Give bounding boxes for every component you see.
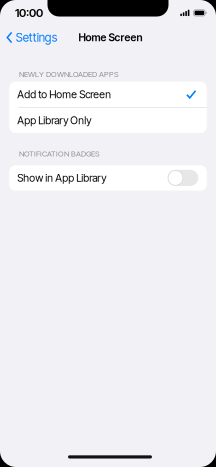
staticText: App Library Only (17, 114, 91, 127)
staticText: Show in App Library (17, 171, 106, 184)
staticText: NEWLY DOWNLOADED APPS (19, 69, 119, 79)
button[interactable]: Add to Home Screen (9, 82, 207, 107)
button[interactable]: App Library Only (9, 108, 207, 133)
staticText: 10:00 (15, 6, 43, 20)
button[interactable]: Settings (0, 26, 63, 49)
staticText: Home Screen (78, 31, 142, 44)
button[interactable]: Show in App Library (9, 165, 207, 191)
staticText: NOTIFICATION BADGES (19, 149, 100, 158)
staticText: Add to Home Screen (17, 88, 111, 101)
staticText: Settings (16, 30, 58, 45)
